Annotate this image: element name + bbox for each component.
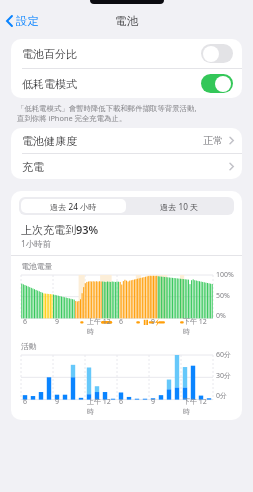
button[interactable]: Toggle on — [201, 74, 233, 93]
staticText: 正常 — [203, 134, 223, 147]
staticText: 活動 — [21, 341, 37, 351]
staticText: 6 — [23, 397, 28, 407]
staticText: 上次充電到93% — [21, 222, 99, 237]
button[interactable]: Toggle off — [201, 44, 233, 63]
staticText: 50% — [216, 291, 230, 301]
staticText: 1小時前 — [21, 238, 52, 250]
button[interactable]: 設定 — [0, 10, 47, 32]
staticText: 6 — [23, 317, 28, 327]
staticText: 60分 — [216, 350, 232, 360]
staticText: 上午 12時 — [87, 397, 117, 416]
staticText: 9 — [55, 397, 60, 407]
staticText: 0% — [216, 311, 226, 321]
staticText: 充電 — [22, 160, 229, 174]
staticText: 過去 10 天 — [160, 201, 199, 212]
staticText: 電池 — [115, 14, 138, 28]
staticText: 30分 — [216, 371, 232, 381]
button[interactable]: 電池健康度 — [11, 128, 242, 153]
staticText: 9 — [151, 397, 156, 407]
staticText: 過去 24 小時 — [50, 201, 97, 212]
staticText: 下午 12時 — [183, 397, 213, 416]
button[interactable]: 過去 24 小時 — [21, 199, 126, 213]
button[interactable]: 充電 — [11, 154, 242, 179]
staticText: 「低耗電模式」會暫時降低下載和郵件擷取等背景活動, — [17, 103, 197, 113]
staticText: 電池電量 — [21, 261, 53, 271]
staticText: 下午 12時 — [183, 317, 213, 336]
staticText: 0分 — [216, 391, 228, 401]
staticText: 設定 — [16, 14, 39, 28]
staticText: 電池百分比 — [22, 47, 201, 61]
button[interactable]: 電池百分比 — [11, 39, 242, 68]
staticText: 低耗電模式 — [22, 77, 201, 91]
staticText: 9 — [151, 317, 156, 327]
button[interactable]: 過去 10 天 — [126, 199, 232, 213]
staticText: 6 — [119, 397, 124, 407]
staticText: 上午 12時 — [87, 317, 117, 336]
staticText: 100% — [216, 270, 234, 280]
button[interactable]: 低耗電模式 — [11, 69, 242, 98]
staticText: 9 — [55, 317, 60, 327]
staticText: 電池健康度 — [22, 134, 203, 148]
staticText: 6 — [119, 317, 124, 327]
staticText: 直到你將 iPhone 完全充電為止。 — [17, 113, 127, 123]
